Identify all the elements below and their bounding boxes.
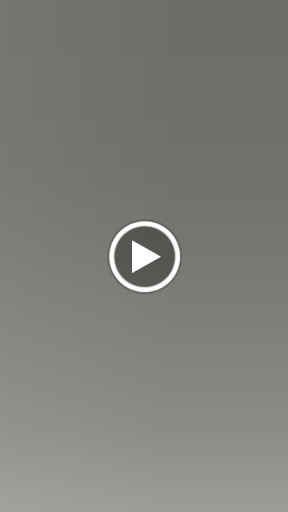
button[interactable]: Play xyxy=(100,212,188,300)
